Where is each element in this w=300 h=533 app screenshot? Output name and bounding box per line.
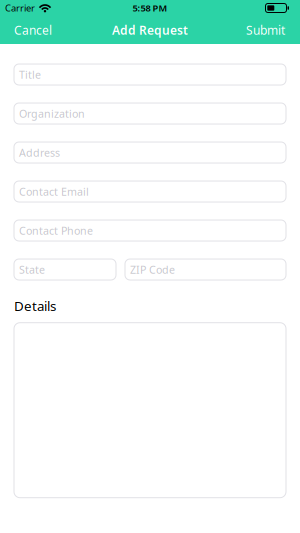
button[interactable]: Submit (246, 22, 300, 38)
button[interactable]: Title (14, 64, 286, 85)
staticText: Title (19, 67, 41, 82)
staticText: State (19, 262, 45, 277)
staticText: Contact Email (19, 184, 89, 199)
staticText: Organization (19, 106, 85, 121)
button[interactable]: Organization (14, 103, 286, 124)
staticText: Address (19, 145, 60, 160)
staticText: Add Request (112, 22, 188, 38)
button[interactable]: Contact Email (14, 181, 286, 202)
staticText: ZIP Code (130, 262, 175, 277)
staticText: Contact Phone (19, 223, 93, 238)
staticText: Details (14, 297, 56, 315)
staticText: 5:58 PM (132, 2, 167, 14)
staticText: Submit (246, 22, 285, 38)
button[interactable]: Address (14, 142, 286, 163)
staticText: Cancel (14, 22, 52, 38)
staticText: Carrier (5, 2, 35, 14)
button[interactable]: State (14, 259, 116, 280)
button[interactable]: Cancel (0, 22, 52, 38)
button[interactable]: ZIP Code (125, 259, 286, 280)
button[interactable]: Contact Phone (14, 220, 286, 241)
